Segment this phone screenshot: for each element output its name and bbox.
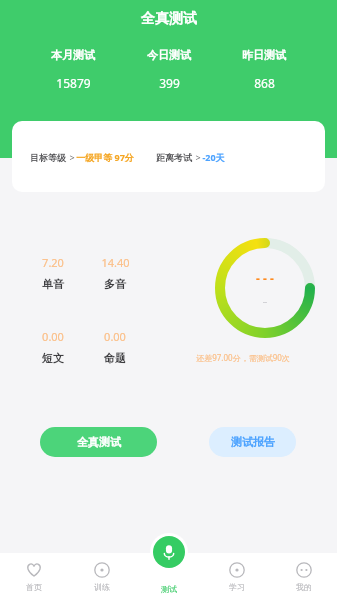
staticText: 测试: [161, 584, 177, 594]
staticText: 单音: [42, 277, 64, 291]
staticText: 今日测试: [147, 48, 191, 62]
staticText: 15879: [56, 75, 91, 91]
staticText: 训练: [94, 582, 110, 592]
staticText: 一级甲等 97分: [76, 151, 134, 163]
staticText: 首页: [26, 582, 42, 592]
staticText: 距离考试: [156, 152, 192, 163]
staticText: 14.40: [101, 255, 130, 270]
button[interactable]: 测试: [153, 536, 185, 568]
staticText: 命题: [104, 351, 126, 365]
staticText: - - -: [256, 270, 274, 286]
button[interactable]: 测试报告: [209, 427, 296, 457]
button[interactable]: 学习: [203, 553, 270, 600]
staticText: 本月测试: [51, 48, 95, 62]
staticText: 学习: [229, 582, 245, 592]
staticText: 测试报告: [231, 435, 275, 449]
staticText: 399: [159, 75, 180, 91]
button[interactable]: 全真测试: [40, 427, 157, 457]
staticText: 多音: [104, 277, 126, 291]
staticText: 0.00: [42, 329, 64, 344]
button[interactable]: 我的: [270, 553, 337, 600]
staticText: >: [192, 151, 202, 163]
staticText: 我的: [296, 582, 312, 592]
staticText: >: [66, 151, 76, 163]
staticText: 全真测试: [141, 10, 197, 28]
staticText: 868: [254, 75, 275, 91]
staticText: 7.20: [42, 255, 64, 270]
staticText: -20天: [202, 151, 225, 163]
staticText: 全真测试: [77, 435, 121, 449]
button[interactable]: 首页: [0, 553, 68, 600]
button[interactable]: 目标等级: [12, 121, 325, 192]
staticText: 0.00: [104, 329, 126, 344]
staticText: 昨日测试: [242, 48, 286, 62]
button[interactable]: 训练: [68, 553, 136, 600]
staticText: 还差97.00分，需测试90次: [196, 352, 290, 363]
staticText: 短文: [42, 351, 64, 365]
staticText: 目标等级: [30, 152, 66, 163]
staticText: --: [263, 298, 267, 306]
